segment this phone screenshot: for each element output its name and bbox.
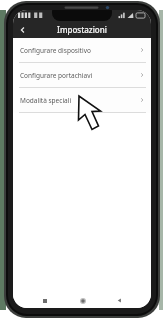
button[interactable]: Configurare portachiavi bbox=[13, 63, 151, 87]
staticText: Configurare portachiavi bbox=[20, 71, 139, 80]
button[interactable]: Configurare dispositivo bbox=[13, 38, 151, 62]
staticText: Configurare dispositivo bbox=[20, 46, 139, 55]
button[interactable]: Home bbox=[76, 294, 89, 307]
button[interactable]: Recents bbox=[38, 294, 51, 307]
button[interactable]: Back bbox=[113, 294, 126, 307]
staticText: Modalità speciali bbox=[20, 96, 139, 105]
button[interactable]: Back bbox=[15, 22, 30, 37]
staticText: Impostazioni bbox=[57, 24, 107, 35]
button[interactable]: Modalità speciali bbox=[13, 88, 151, 112]
